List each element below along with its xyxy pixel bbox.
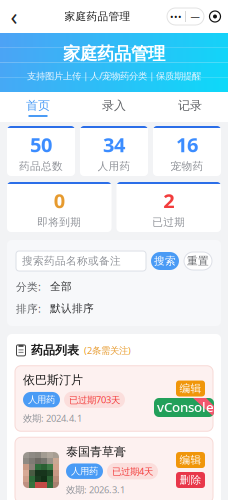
staticText: 家庭药品管理	[64, 10, 130, 23]
staticText: 录入	[102, 98, 126, 113]
button[interactable]: More	[167, 8, 185, 25]
staticText: (2条需关注)	[84, 344, 131, 357]
staticText: 效期: 2024.4.1	[23, 412, 82, 424]
button[interactable]: 删除	[176, 472, 205, 488]
staticText: 人用药	[28, 394, 55, 405]
staticText: 即将到期	[37, 216, 81, 229]
button[interactable]: Minimize	[186, 8, 204, 25]
button[interactable]: Back	[0, 3, 28, 29]
button[interactable]: 泰国青草膏	[15, 437, 213, 500]
staticText: 已过期	[152, 216, 185, 229]
staticText: •••	[170, 10, 182, 23]
staticText: 删除	[179, 402, 201, 415]
button[interactable]: 重置	[184, 252, 212, 270]
button[interactable]: vConsole	[154, 398, 214, 417]
staticText: 已过期4天	[112, 465, 153, 477]
staticText: 搜索	[154, 254, 176, 267]
staticText: 编辑	[179, 382, 201, 395]
staticText: 全部	[50, 280, 72, 293]
staticText: 排序:	[16, 301, 41, 316]
staticText: 搜索药品名称或备注	[22, 254, 121, 267]
button[interactable]: 搜索	[151, 252, 179, 270]
staticText: 宠物药	[170, 160, 203, 173]
staticText: 34	[103, 131, 125, 158]
staticText: 已过期703天	[69, 393, 120, 406]
staticText: 重置	[187, 254, 209, 267]
button[interactable]: 首页	[0, 92, 76, 122]
button[interactable]: 编辑	[176, 452, 205, 468]
staticText: —	[190, 10, 199, 23]
button[interactable]: Locate	[204, 6, 226, 26]
staticText: 0	[54, 187, 65, 214]
button[interactable]: 依巴斯汀片	[15, 366, 213, 431]
button[interactable]: 排序:	[16, 302, 212, 315]
staticText: 家庭药品管理	[63, 43, 165, 64]
staticText: 16	[176, 131, 198, 158]
staticText: 人用药	[97, 160, 130, 173]
button[interactable]: 记录	[152, 92, 228, 122]
staticText: 支持图片上传 | 人/宠物药分类 | 保质期提醒	[27, 69, 201, 82]
staticText: 编辑	[179, 453, 201, 467]
staticText: 分类:	[16, 279, 41, 294]
staticText: 人用药	[71, 465, 98, 477]
button[interactable]: 录入	[76, 92, 152, 122]
staticText: 泰国青草膏	[66, 444, 126, 459]
staticText: vConsole	[157, 398, 214, 416]
staticText: ‹	[10, 1, 17, 31]
staticText: 记录	[178, 98, 202, 113]
staticText: 删除	[179, 473, 201, 487]
staticText: 首页	[26, 98, 50, 113]
staticText: 效期: 2026.3.1	[66, 483, 125, 496]
staticText: 药品列表	[31, 343, 79, 358]
button[interactable]: 分类:	[16, 280, 212, 293]
staticText: 2	[163, 187, 174, 214]
button[interactable]: 删除	[176, 400, 205, 416]
staticText: 药品总数	[19, 160, 63, 173]
staticText: 默认排序	[50, 302, 94, 315]
button[interactable]: 编辑	[176, 380, 205, 396]
staticText: 依巴斯汀片	[23, 373, 83, 387]
staticText: 50	[30, 131, 52, 158]
